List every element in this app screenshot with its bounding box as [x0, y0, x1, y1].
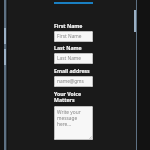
button[interactable]: Last Name [54, 53, 93, 64]
staticText: First Name [54, 22, 83, 29]
button[interactable]: name@gms [54, 76, 93, 87]
staticText: First Name [57, 33, 82, 40]
staticText: Last Name [54, 44, 82, 51]
staticText: Email address [54, 67, 90, 74]
staticText: name@gms [57, 78, 84, 85]
staticText: Write your message here... [57, 109, 81, 127]
button[interactable]: Write your message here... [54, 106, 93, 140]
button[interactable]: First Name [54, 31, 93, 42]
staticText: Last Name [57, 55, 82, 62]
staticText: Your Voice Matters [54, 90, 93, 104]
